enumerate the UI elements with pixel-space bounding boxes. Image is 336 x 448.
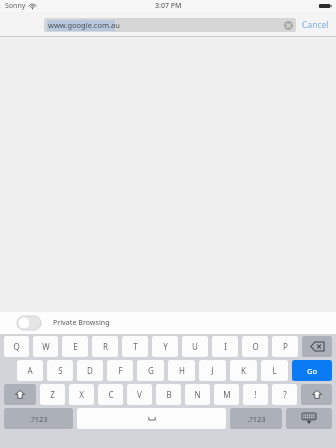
staticText: W — [42, 341, 50, 352]
staticText: .?123 — [247, 414, 266, 424]
staticText: Private Browsing — [53, 318, 110, 328]
staticText: Sonny — [5, 1, 26, 11]
button[interactable]: U — [182, 336, 208, 357]
staticText: N — [194, 389, 201, 400]
button[interactable]: Y — [152, 336, 178, 357]
button[interactable]: E — [62, 336, 88, 357]
staticText: C — [108, 389, 114, 400]
staticText: www.google.com.au — [48, 20, 120, 30]
button[interactable]: Shift — [4, 384, 36, 405]
staticText: H — [179, 365, 185, 376]
button[interactable]: P — [272, 336, 298, 357]
staticText: I — [224, 341, 227, 352]
button[interactable]: Hide keyboard — [286, 408, 332, 429]
button[interactable]: A — [17, 360, 43, 381]
button[interactable]: ! — [243, 384, 268, 405]
button[interactable]: N — [185, 384, 210, 405]
button[interactable]: Z — [40, 384, 65, 405]
staticText: P — [283, 341, 288, 352]
button[interactable]: H — [168, 360, 195, 381]
button[interactable]: O — [242, 336, 268, 357]
button[interactable]: Shift — [301, 384, 332, 405]
button[interactable]: Q — [4, 336, 29, 357]
button[interactable]: V — [127, 384, 152, 405]
staticText: K — [241, 365, 246, 376]
staticText: R — [103, 341, 108, 352]
staticText: Q — [13, 341, 20, 352]
staticText: F — [118, 365, 123, 376]
staticText: D — [87, 365, 93, 376]
button[interactable]: Private Browsing toggle — [17, 316, 41, 330]
button[interactable]: K — [230, 360, 257, 381]
button[interactable]: J — [199, 360, 226, 381]
staticText: Go — [307, 366, 317, 376]
staticText: A — [27, 365, 33, 376]
button[interactable]: Space — [77, 408, 226, 429]
staticText: B — [166, 389, 172, 400]
staticText: E — [73, 341, 78, 352]
button[interactable]: F — [107, 360, 133, 381]
button[interactable]: Cancel — [299, 16, 332, 34]
button[interactable]: .?123 — [230, 408, 282, 429]
button[interactable]: .?123 — [4, 408, 73, 429]
button[interactable]: L — [261, 360, 288, 381]
button[interactable]: Go — [292, 360, 332, 381]
staticText: L — [272, 365, 277, 376]
button[interactable]: B — [156, 384, 181, 405]
staticText: G — [148, 365, 154, 376]
button[interactable]: M — [214, 384, 239, 405]
button[interactable]: W — [33, 336, 58, 357]
staticText: ! — [254, 389, 257, 400]
staticText: S — [58, 365, 63, 376]
button[interactable]: D — [77, 360, 103, 381]
staticText: Cancel — [302, 19, 329, 31]
button[interactable]: Clear text — [284, 21, 293, 30]
button[interactable]: T — [122, 336, 148, 357]
button[interactable]: I — [212, 336, 238, 357]
button[interactable]: S — [47, 360, 73, 381]
button[interactable]: C — [98, 384, 123, 405]
staticText: ? — [283, 389, 287, 400]
staticText: Y — [163, 341, 168, 352]
staticText: O — [252, 341, 259, 352]
staticText: Z — [50, 389, 55, 400]
staticText: U — [192, 341, 198, 352]
staticText: X — [79, 389, 84, 400]
button[interactable]: www.google.com.au — [44, 18, 296, 32]
staticText: V — [137, 389, 142, 400]
button[interactable]: Backspace — [302, 336, 332, 357]
button[interactable]: X — [69, 384, 94, 405]
staticText: .?123 — [29, 414, 48, 424]
staticText: J — [211, 365, 214, 376]
button[interactable]: R — [92, 336, 118, 357]
button[interactable]: G — [137, 360, 164, 381]
staticText: T — [133, 341, 138, 352]
button[interactable]: ? — [272, 384, 297, 405]
staticText: 3:07 PM — [155, 1, 182, 11]
staticText: M — [223, 389, 231, 400]
